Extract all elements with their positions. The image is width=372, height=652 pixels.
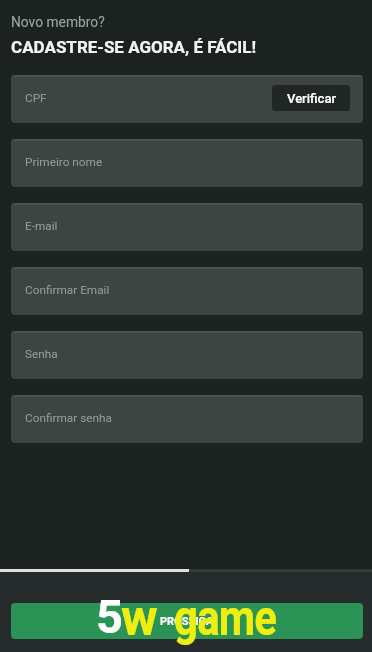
staticText: Confirmar senha	[25, 411, 112, 425]
button[interactable]: Verificar	[272, 85, 350, 111]
staticText: CADASTRE-SE AGORA, É FÁCIL!	[11, 37, 257, 57]
button[interactable]: CPF	[11, 75, 363, 123]
staticText: Verificar	[287, 91, 336, 106]
staticText: PROSSIGA	[160, 615, 214, 628]
staticText: CPF	[25, 91, 47, 105]
staticText: Senha	[25, 347, 58, 361]
staticText: 5	[96, 589, 123, 644]
staticText: Primeiro nome	[25, 155, 103, 169]
button[interactable]: PROSSIGA	[11, 603, 363, 639]
button[interactable]: Primeiro nome	[11, 139, 363, 187]
staticText: game	[174, 589, 276, 648]
button[interactable]: Senha	[11, 331, 363, 379]
staticText: E-mail	[25, 219, 58, 233]
button[interactable]: Confirmar Email	[11, 267, 363, 315]
button[interactable]: Confirmar senha	[11, 395, 363, 443]
button[interactable]: E-mail	[11, 203, 363, 251]
staticText: Confirmar Email	[25, 283, 110, 297]
staticText: Novo membro?	[11, 14, 105, 30]
staticText: w	[121, 589, 158, 648]
